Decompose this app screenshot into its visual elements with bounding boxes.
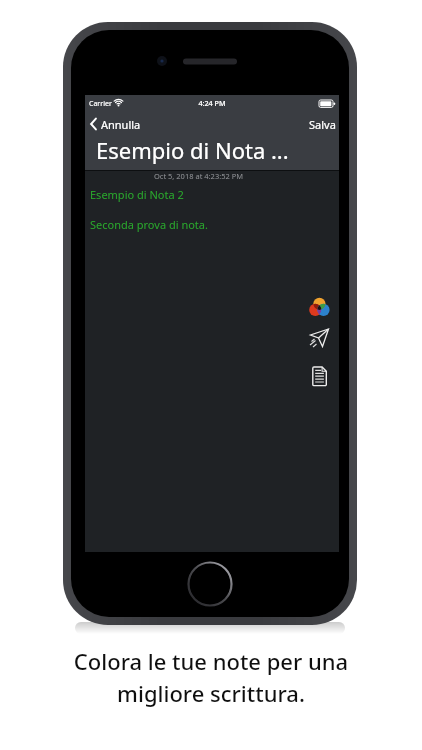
staticText: 4:24 PM [85, 98, 339, 108]
staticText: Esempio di Nota ... [96, 135, 289, 165]
button[interactable] [306, 326, 332, 351]
staticText: Esempio di Nota 2 [90, 187, 184, 202]
staticText: Oct 5, 2018 at 4:23:52 PM [85, 171, 312, 181]
staticText: Salva [309, 117, 336, 132]
staticText: Colora le tue note per una [0, 646, 422, 676]
button[interactable]: Annulla [90, 115, 141, 133]
button[interactable] [306, 294, 332, 319]
staticText: migliore scrittura. [0, 678, 422, 708]
staticText: Seconda prova di nota. [90, 217, 208, 232]
staticText: Carrier [89, 99, 112, 109]
button[interactable] [306, 364, 332, 389]
button[interactable]: Salva [295, 115, 339, 133]
staticText: Annulla [101, 117, 141, 132]
